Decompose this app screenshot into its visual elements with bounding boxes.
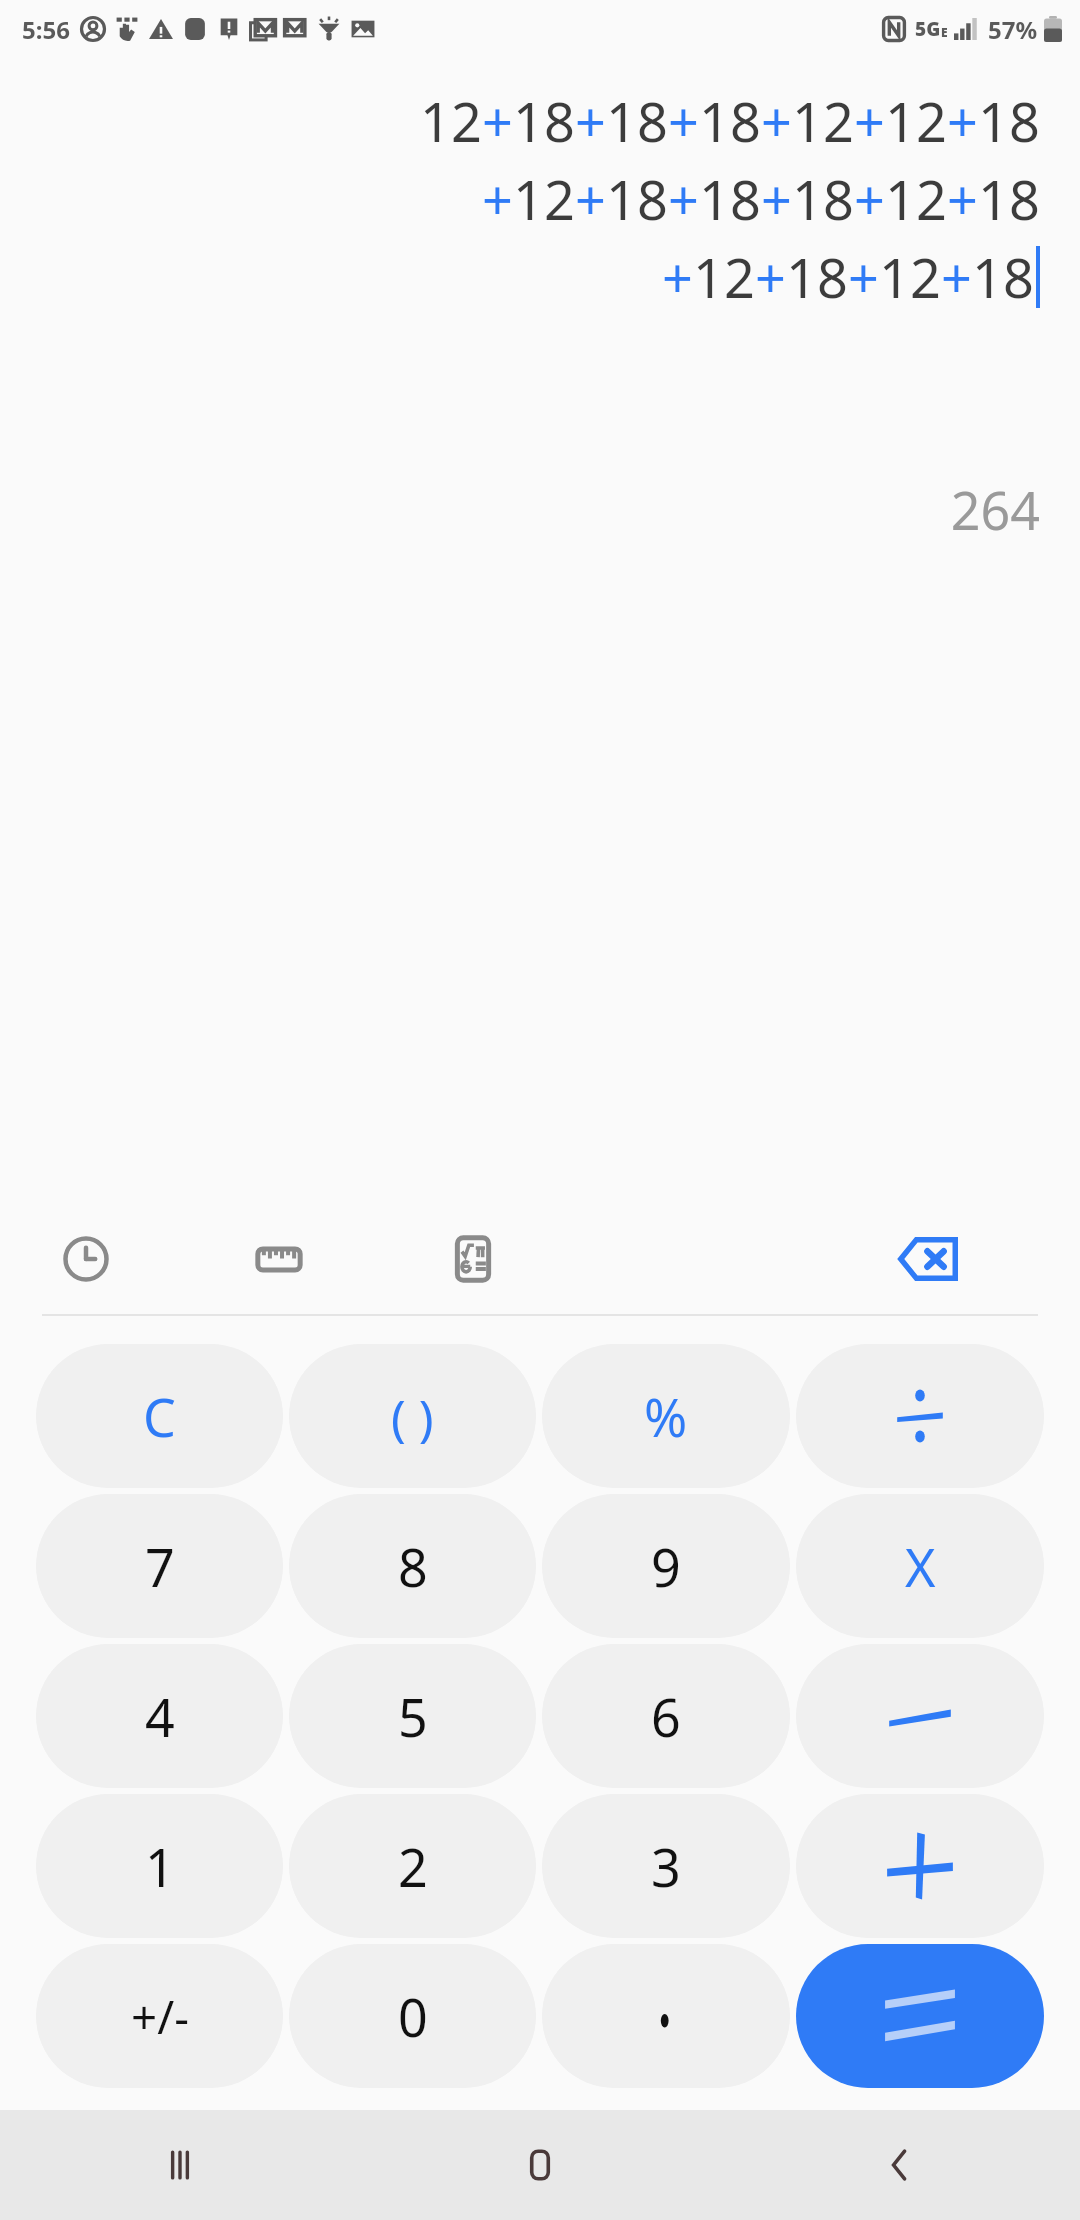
button[interactable]: 4 — [36, 1644, 283, 1788]
staticText: X — [905, 1531, 936, 1602]
staticText: 18 — [513, 84, 575, 158]
staticText: + — [575, 162, 606, 236]
staticText: 4 — [145, 1681, 175, 1752]
button[interactable]: 6 — [542, 1644, 790, 1788]
staticText: + — [941, 240, 972, 314]
button[interactable]: % — [542, 1344, 790, 1488]
button[interactable]: Decimal point — [542, 1944, 790, 2088]
staticText: % — [644, 1381, 688, 1452]
staticText: + — [854, 162, 885, 236]
staticText: 18 — [792, 162, 854, 236]
button[interactable]: ( ) — [289, 1344, 536, 1488]
staticText: E — [941, 24, 948, 40]
staticText: 18 — [606, 84, 668, 158]
staticText: 5G — [915, 16, 941, 42]
staticText: + — [947, 162, 978, 236]
staticText: 12 — [693, 240, 755, 314]
button[interactable]: Backspace — [884, 1215, 972, 1303]
staticText: 12 — [885, 162, 947, 236]
staticText: 18 — [978, 84, 1040, 158]
staticText: 12 — [513, 162, 575, 236]
staticText: ( ) — [391, 1383, 434, 1450]
staticText: 5 — [398, 1681, 428, 1752]
button[interactable]: 2 — [289, 1794, 536, 1938]
button[interactable]: Equals — [796, 1944, 1044, 2088]
button[interactable]: Minus — [796, 1644, 1044, 1788]
staticText: 0 — [398, 1981, 428, 2052]
staticText: + — [761, 162, 792, 236]
staticText: 5:56 — [22, 13, 70, 46]
staticText: 3 — [651, 1831, 681, 1902]
button[interactable]: 9 — [542, 1494, 790, 1638]
staticText: + — [848, 240, 879, 314]
staticText: + — [575, 84, 606, 158]
staticText: 12 — [792, 84, 854, 158]
button[interactable]: 7 — [36, 1494, 283, 1638]
button[interactable]: Back — [720, 2110, 1080, 2220]
staticText: 18 — [978, 162, 1040, 236]
staticText: 12 — [885, 84, 947, 158]
button[interactable]: Divide — [796, 1344, 1044, 1488]
staticText: 18 — [699, 84, 761, 158]
staticText: 2 — [398, 1831, 428, 1902]
button[interactable]: 5 — [289, 1644, 536, 1788]
staticText: 18 — [786, 240, 848, 314]
staticText: + — [947, 84, 978, 158]
staticText: 18 — [606, 162, 668, 236]
staticText: + — [755, 240, 786, 314]
staticText: + — [482, 84, 513, 158]
button[interactable]: Plus — [796, 1794, 1044, 1938]
staticText: 12 — [420, 84, 482, 158]
staticText: 18 — [972, 240, 1034, 314]
staticText: C — [143, 1381, 176, 1452]
staticText: 264 — [950, 474, 1040, 545]
button[interactable]: History — [46, 1219, 126, 1299]
button[interactable]: 8 — [289, 1494, 536, 1638]
staticText: + — [662, 240, 693, 314]
staticText: 57% — [988, 13, 1038, 46]
button[interactable]: Scientific calculator — [433, 1219, 513, 1299]
staticText: 12 — [879, 240, 941, 314]
staticText: + — [668, 162, 699, 236]
button[interactable]: Home — [360, 2110, 720, 2220]
button[interactable]: Recents — [0, 2110, 360, 2220]
staticText: 9 — [651, 1531, 681, 1602]
staticText: +/- — [131, 1985, 189, 2047]
button[interactable]: X — [796, 1494, 1044, 1638]
staticText: + — [761, 84, 792, 158]
staticText: 6 — [651, 1681, 681, 1752]
button[interactable]: 3 — [542, 1794, 790, 1938]
staticText: + — [854, 84, 885, 158]
staticText: 8 — [398, 1531, 428, 1602]
staticText: + — [482, 162, 513, 236]
button[interactable]: 1 — [36, 1794, 283, 1938]
staticText: 7 — [145, 1531, 175, 1602]
staticText: + — [668, 84, 699, 158]
button[interactable]: +/- — [36, 1944, 283, 2088]
button[interactable]: 0 — [289, 1944, 536, 2088]
staticText: 1 — [145, 1831, 175, 1902]
button[interactable]: C — [36, 1344, 283, 1488]
staticText: 18 — [699, 162, 761, 236]
button[interactable]: Unit converter — [239, 1219, 319, 1299]
